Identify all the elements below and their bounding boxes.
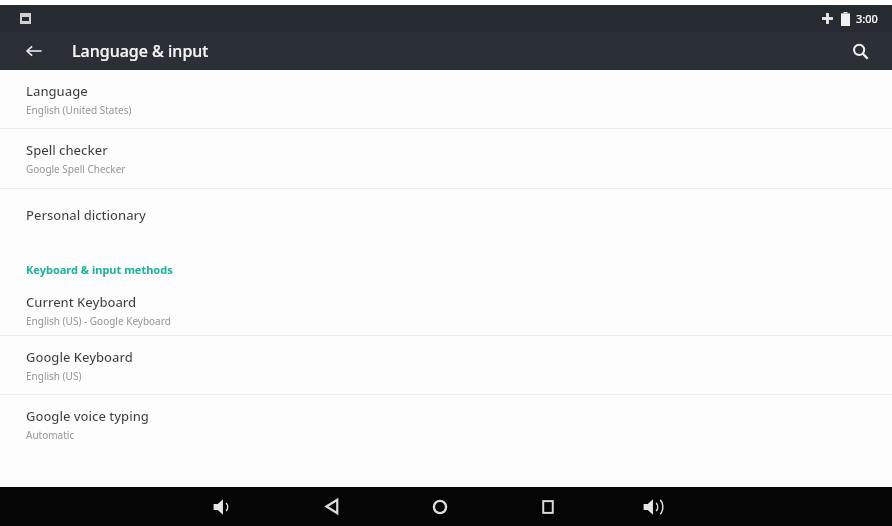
staticText: Spell checker xyxy=(26,141,108,159)
button[interactable]: Spell checker xyxy=(0,129,892,188)
staticText: Google Spell Checker xyxy=(26,162,126,176)
staticText: Google Keyboard xyxy=(26,348,133,366)
staticText: Google voice typing xyxy=(26,407,149,425)
button[interactable]: Language xyxy=(0,70,892,128)
staticText: English (US) - Google Keyboard xyxy=(26,314,171,328)
button[interactable]: Back xyxy=(310,487,354,526)
button[interactable]: Google Keyboard xyxy=(0,336,892,394)
button[interactable]: Recent apps xyxy=(526,487,570,526)
button[interactable]: Back xyxy=(16,33,52,69)
button[interactable]: Search xyxy=(842,33,878,69)
staticText: Language xyxy=(26,82,88,100)
button[interactable]: Volume down xyxy=(202,487,246,526)
staticText: English (United States) xyxy=(26,103,132,117)
button[interactable]: Personal dictionary xyxy=(0,189,892,241)
staticText: Personal dictionary xyxy=(26,206,146,224)
staticText: 3:00 xyxy=(856,11,878,26)
button[interactable]: Google voice typing xyxy=(0,395,892,453)
button[interactable]: Current Keyboard xyxy=(0,285,892,335)
button[interactable]: Volume up xyxy=(632,487,676,526)
button[interactable]: Home xyxy=(418,487,462,526)
staticText: Keyboard & input methods xyxy=(26,262,173,277)
staticText: Current Keyboard xyxy=(26,293,137,311)
staticText: English (US) xyxy=(26,369,82,383)
staticText: Automatic xyxy=(26,428,75,442)
staticText: Language & input xyxy=(72,40,209,62)
